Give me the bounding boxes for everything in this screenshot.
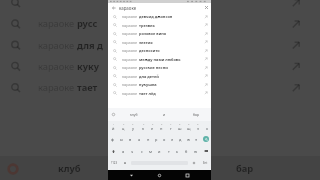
- button[interactable]: ж: [184, 133, 192, 145]
- staticText: караоке: [122, 82, 139, 87]
- staticText: в: [129, 137, 132, 142]
- button[interactable]: п: [144, 133, 152, 145]
- staticText: 0: [197, 123, 199, 126]
- staticText: 6: [161, 123, 163, 126]
- staticText: з: [197, 126, 199, 131]
- button[interactable]: Back: [108, 3, 119, 12]
- button[interactable]: 8: [175, 121, 184, 133]
- button[interactable]: 2: [118, 121, 128, 133]
- button[interactable]: бар: [180, 108, 211, 121]
- staticText: бар: [193, 112, 199, 117]
- staticText: ю: [194, 149, 198, 154]
- button[interactable]: м: [146, 145, 155, 157]
- button[interactable]: караоке: [108, 21, 211, 29]
- staticText: к: [142, 126, 145, 131]
- button[interactable]: караоке: [108, 80, 211, 89]
- staticText: р: [155, 137, 158, 142]
- button[interactable]: ю: [191, 145, 200, 157]
- staticText: х: [206, 126, 208, 131]
- staticText: клуб: [130, 112, 138, 117]
- button[interactable]: б: [182, 145, 191, 157]
- staticText: куку: [77, 60, 100, 73]
- button[interactable]: Search: [200, 133, 211, 145]
- button[interactable]: о: [160, 133, 168, 145]
- staticText: клуб: [58, 162, 81, 175]
- button[interactable]: клуб: [119, 108, 149, 121]
- button[interactable]: Recent apps: [183, 171, 192, 180]
- staticText: б: [185, 149, 188, 154]
- button[interactable]: Comma: [120, 157, 130, 169]
- staticText: караоке: [122, 23, 139, 28]
- staticText: э: [195, 137, 197, 142]
- staticText: тает лёд: [139, 91, 156, 96]
- staticText: 2: [123, 123, 125, 126]
- button[interactable]: Google: [108, 108, 119, 121]
- staticText: ь: [176, 149, 179, 154]
- button[interactable]: а: [135, 133, 144, 145]
- button[interactable]: ч: [128, 145, 137, 157]
- staticText: ч: [131, 149, 134, 154]
- button[interactable]: в: [126, 133, 135, 145]
- button[interactable]: ы: [117, 133, 126, 145]
- button[interactable]: караоке: [108, 38, 211, 46]
- button[interactable]: т: [164, 145, 173, 157]
- button[interactable]: х: [202, 121, 211, 133]
- button[interactable]: Backspace: [200, 145, 211, 157]
- button[interactable]: караоке: [108, 89, 211, 97]
- button[interactable]: караоке: [108, 12, 211, 21]
- button[interactable]: караоке: [108, 29, 211, 38]
- staticText: ж: [187, 137, 190, 142]
- staticText: 5: [152, 123, 154, 126]
- button[interactable]: и: [155, 145, 164, 157]
- button[interactable]: караоке: [108, 63, 211, 72]
- staticText: л: [171, 137, 174, 142]
- button[interactable]: 7: [166, 121, 175, 133]
- button[interactable]: л: [168, 133, 176, 145]
- button[interactable]: Home: [155, 171, 164, 180]
- button[interactable]: Back: [127, 171, 136, 180]
- staticText: караоке: [38, 60, 77, 73]
- staticText: 4: [143, 123, 145, 126]
- staticText: 1: [113, 123, 115, 126]
- button[interactable]: с: [137, 145, 146, 157]
- button[interactable]: и: [149, 108, 180, 121]
- button[interactable]: караоке: [108, 72, 211, 80]
- staticText: г: [170, 126, 172, 131]
- button[interactable]: 5: [148, 121, 157, 133]
- staticText: м: [149, 149, 152, 154]
- button[interactable]: ь: [173, 145, 182, 157]
- staticText: й: [112, 126, 115, 131]
- button[interactable]: 3: [128, 121, 138, 133]
- button[interactable]: Shift: [108, 145, 119, 157]
- staticText: караоке: [122, 74, 139, 79]
- staticText: Ent: [203, 161, 208, 165]
- staticText: с: [141, 149, 143, 154]
- button[interactable]: ?123: [108, 157, 120, 169]
- button[interactable]: Ent: [199, 157, 211, 169]
- staticText: тает: [77, 81, 98, 94]
- staticText: караоке: [122, 31, 139, 36]
- button[interactable]: ф: [108, 133, 117, 145]
- staticText: 3: [132, 123, 134, 126]
- button[interactable]: 0: [193, 121, 202, 133]
- staticText: розовое вино: [139, 31, 167, 36]
- button[interactable]: 1: [108, 121, 118, 133]
- button[interactable]: Period: [189, 157, 199, 169]
- button[interactable]: 9: [184, 121, 193, 133]
- button[interactable]: караоке: [108, 46, 211, 55]
- button[interactable]: 4: [138, 121, 148, 133]
- button[interactable]: я: [119, 145, 128, 157]
- staticText: ш: [178, 126, 182, 131]
- button[interactable]: караоке: [108, 55, 211, 63]
- staticText: караоке: [122, 40, 139, 45]
- staticText: караоке: [38, 81, 77, 94]
- staticText: т: [168, 149, 170, 154]
- button[interactable]: 6: [157, 121, 166, 133]
- staticText: п: [147, 137, 150, 142]
- button[interactable]: р: [152, 133, 160, 145]
- button[interactable]: э: [192, 133, 200, 145]
- staticText: элегия: [139, 40, 153, 45]
- button[interactable]: д: [176, 133, 184, 145]
- button[interactable]: Clear query: [201, 3, 211, 12]
